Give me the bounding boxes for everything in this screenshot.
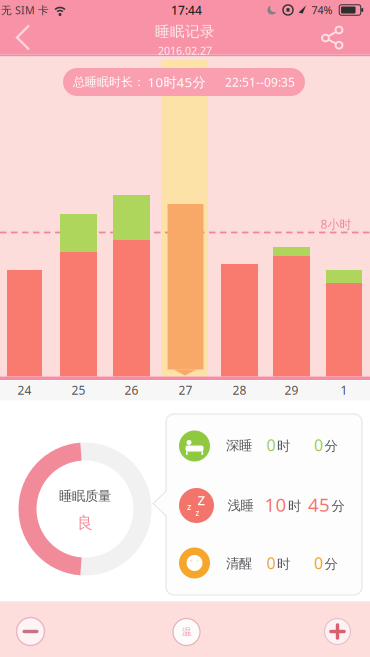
staticText: 睡眠记录 (155, 22, 215, 40)
staticText: 2016.02.27 (158, 43, 212, 58)
staticText: 27 (178, 382, 192, 398)
button[interactable] (315, 20, 351, 56)
staticText: 浅睡 (227, 497, 253, 514)
button[interactable] (324, 618, 350, 644)
staticText: 45 (308, 492, 330, 517)
staticText: 时 (277, 438, 290, 454)
button[interactable] (167, 204, 203, 369)
staticText: 25 (71, 382, 85, 398)
staticText: 时 (277, 556, 290, 572)
staticText: 0 (314, 552, 323, 574)
staticText: 分 (331, 498, 344, 514)
button[interactable]: 温 (173, 618, 200, 645)
staticText: 睡眠质量 (59, 488, 111, 504)
staticText: 良 (77, 513, 93, 533)
button[interactable] (273, 247, 310, 376)
staticText: 8小时 (320, 216, 351, 232)
staticText: 28 (232, 382, 246, 398)
staticText: 分 (324, 556, 337, 572)
staticText: 10时45分 (147, 73, 205, 91)
staticText: 深睡 (226, 437, 252, 454)
button[interactable] (326, 270, 362, 376)
staticText: 22:51--09:35 (225, 74, 295, 90)
button[interactable] (113, 195, 150, 376)
staticText: 29 (284, 382, 298, 398)
staticText: 温 (182, 626, 191, 638)
staticText: 分 (324, 438, 337, 454)
staticText: z (187, 500, 191, 513)
staticText: 1 (340, 382, 347, 398)
staticText: z (195, 508, 199, 518)
staticText: 26 (124, 382, 138, 398)
staticText: 时 (288, 498, 301, 514)
staticText: 10 (264, 492, 286, 517)
staticText: 0 (266, 552, 275, 574)
button[interactable] (60, 214, 97, 376)
staticText: 清醒 (226, 555, 252, 572)
staticText: 24 (17, 382, 31, 398)
staticText: Z (197, 491, 205, 509)
staticText: 0 (266, 434, 275, 456)
staticText: 总睡眠时长： (73, 75, 145, 89)
staticText: 0 (314, 434, 323, 456)
button[interactable] (16, 617, 44, 645)
staticText: 17:44 (171, 2, 202, 18)
button[interactable] (9, 13, 53, 57)
staticText: 74% (311, 3, 332, 17)
staticText: 无 SIM 卡 (1, 3, 49, 17)
